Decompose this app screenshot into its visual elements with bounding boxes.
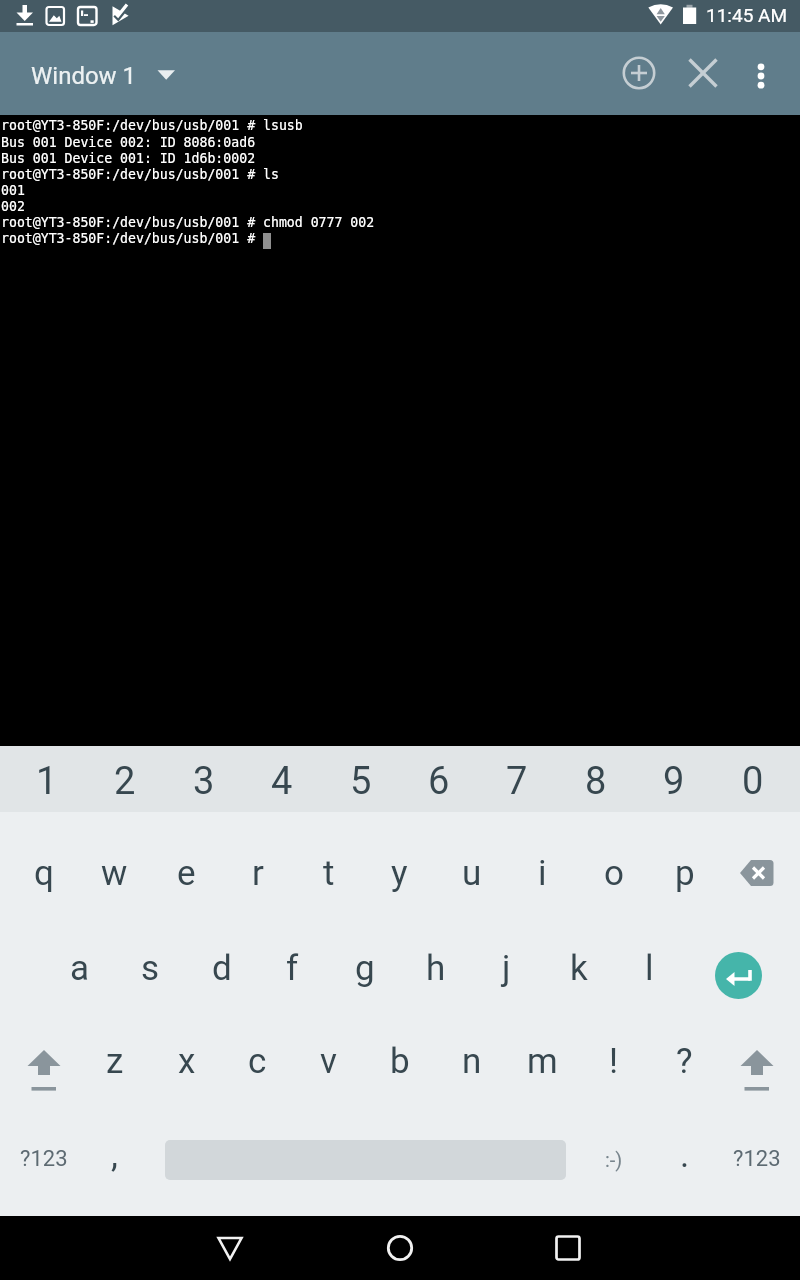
button[interactable] <box>528 1216 608 1280</box>
button[interactable]: g <box>329 913 400 1014</box>
staticText: 1 <box>36 759 58 804</box>
staticText: a <box>70 948 90 989</box>
staticText: 2 <box>114 759 136 804</box>
button[interactable] <box>615 49 663 97</box>
staticText: h <box>426 948 446 989</box>
button[interactable]: e <box>151 812 222 913</box>
button[interactable] <box>721 1014 792 1115</box>
button[interactable]: u <box>436 812 507 913</box>
staticText: o <box>604 853 624 894</box>
button[interactable]: 3 <box>165 746 243 812</box>
button[interactable]: r <box>222 812 293 913</box>
staticText: ?123 <box>733 1146 781 1172</box>
staticText: y <box>391 853 408 894</box>
button[interactable]: n <box>436 1014 507 1115</box>
button[interactable]: k <box>543 913 614 1014</box>
staticText: p <box>675 853 695 894</box>
button[interactable]: x <box>151 1014 222 1115</box>
button[interactable]: 5 <box>322 746 400 812</box>
staticText: g <box>355 948 375 989</box>
staticText: z <box>106 1041 124 1082</box>
staticText: t <box>323 853 335 894</box>
staticText: 7 <box>506 759 528 804</box>
button[interactable]: 2 <box>86 746 164 812</box>
staticText: i <box>538 853 547 894</box>
staticText: 5 <box>350 759 372 804</box>
button[interactable]: . <box>649 1115 720 1216</box>
button[interactable] <box>685 913 792 1014</box>
button[interactable]: i <box>507 812 578 913</box>
staticText: c <box>248 1041 267 1082</box>
button[interactable]: 9 <box>635 746 713 812</box>
button[interactable] <box>721 812 792 913</box>
staticText: 0 <box>742 759 764 804</box>
button[interactable]: p <box>649 812 720 913</box>
staticText: u <box>462 853 482 894</box>
staticText: :-) <box>605 1148 623 1171</box>
staticText: ? <box>676 1041 693 1082</box>
button[interactable]: j <box>471 913 542 1014</box>
button[interactable]: o <box>578 812 649 913</box>
staticText: f <box>286 948 299 989</box>
staticText: ! <box>609 1041 619 1082</box>
staticText: r <box>252 853 264 894</box>
staticText: 3 <box>193 759 215 804</box>
button[interactable]: v <box>293 1014 364 1115</box>
button[interactable]: ?123 <box>8 1115 79 1216</box>
staticText: 4 <box>271 759 293 804</box>
staticText: 9 <box>663 759 685 804</box>
staticText: l <box>645 948 654 989</box>
button[interactable] <box>360 1216 440 1280</box>
button[interactable] <box>741 49 781 97</box>
staticText: b <box>390 1041 410 1082</box>
button[interactable]: h <box>400 913 471 1014</box>
button[interactable]: ? <box>649 1014 720 1115</box>
staticText: 8 <box>585 759 607 804</box>
staticText: 6 <box>428 759 450 804</box>
button[interactable]: t <box>293 812 364 913</box>
button[interactable] <box>8 1014 79 1115</box>
staticText: s <box>141 948 160 989</box>
button[interactable]: b <box>364 1014 435 1115</box>
button[interactable]: m <box>507 1014 578 1115</box>
button[interactable]: 6 <box>400 746 478 812</box>
button[interactable]: f <box>257 913 328 1014</box>
button[interactable]: s <box>115 913 186 1014</box>
staticText: w <box>101 853 128 894</box>
staticText: . <box>680 1135 690 1176</box>
button[interactable]: 1 <box>8 746 86 812</box>
staticText: Window 1 <box>31 62 137 90</box>
staticText: ?123 <box>20 1146 68 1172</box>
staticText: 11:45 AM <box>706 4 788 26</box>
button[interactable] <box>679 49 727 97</box>
button[interactable]: y <box>364 812 435 913</box>
button[interactable] <box>190 1216 270 1280</box>
staticText: x <box>178 1041 196 1082</box>
button[interactable]: w <box>79 812 150 913</box>
button[interactable]: , <box>79 1115 150 1216</box>
button[interactable]: q <box>8 812 79 913</box>
button[interactable]: d <box>186 913 257 1014</box>
staticText: v <box>320 1041 337 1082</box>
staticText: root@YT3-850F:/dev/bus/usb/001 # lsusb B… <box>1 118 375 246</box>
button[interactable]: 4 <box>243 746 321 812</box>
button[interactable]: c <box>222 1014 293 1115</box>
staticText: j <box>502 948 511 989</box>
button[interactable]: a <box>44 913 115 1014</box>
button[interactable]: 7 <box>478 746 556 812</box>
button[interactable]: :-) <box>578 1115 649 1216</box>
button[interactable]: ! <box>578 1014 649 1115</box>
button[interactable]: ?123 <box>721 1115 792 1216</box>
staticText: q <box>34 853 54 894</box>
staticText: m <box>527 1041 558 1082</box>
staticText: , <box>111 1135 118 1176</box>
button[interactable]: l <box>614 913 685 1014</box>
staticText: d <box>212 948 232 989</box>
button[interactable]: z <box>79 1014 150 1115</box>
staticText: k <box>570 948 588 989</box>
button[interactable]: 0 <box>714 746 792 812</box>
button[interactable]: Window 1 <box>20 46 190 102</box>
button[interactable]: 8 <box>557 746 635 812</box>
staticText: n <box>462 1041 482 1082</box>
